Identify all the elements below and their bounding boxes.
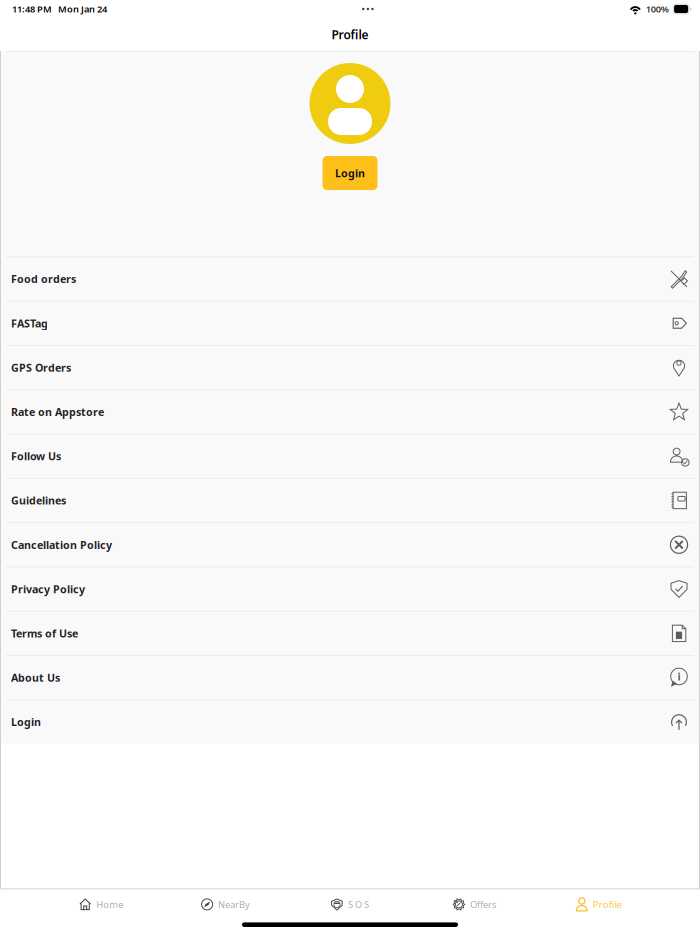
staticText: 11:48 PM [12,3,52,15]
button[interactable]: Login [0,699,700,744]
button[interactable]: Guidelines [0,478,700,522]
button[interactable]: NearBy [163,889,288,919]
staticText: 100% [642,3,673,15]
staticText: NearBy [218,898,250,911]
staticText: About Us [11,671,60,685]
button[interactable]: Food orders [0,256,700,301]
button[interactable]: Login [322,156,377,190]
staticText: Offers [470,898,496,911]
staticText: Profile [593,898,622,911]
staticText: Rate on Appstore [11,405,104,419]
button[interactable]: Rate on Appstore [0,389,700,433]
staticText: Home [96,898,123,911]
button[interactable]: Profile [537,889,661,919]
button[interactable]: Terms of Use [0,611,700,655]
staticText: Privacy Policy [11,582,85,596]
staticText: Login [11,715,41,729]
button[interactable]: About Us [0,655,700,699]
staticText: Cancellation Policy [11,538,112,552]
staticText: S O S [348,898,369,911]
staticText: Follow Us [11,449,61,463]
staticText: Food orders [11,272,76,286]
button[interactable]: Follow Us [0,433,700,478]
staticText: Guidelines [11,493,66,508]
button[interactable]: Privacy Policy [0,566,700,611]
staticText: FASTag [11,316,48,330]
button[interactable]: Home [39,889,163,919]
button[interactable]: GPS Orders [0,345,700,389]
staticText: i [677,669,680,684]
staticText: Terms of Use [11,626,78,640]
staticText: Profile [331,26,368,42]
button[interactable]: Cancellation Policy [0,522,700,566]
button[interactable]: Offers [412,889,537,919]
button[interactable]: FASTag [0,301,700,345]
button[interactable]: S O S [288,889,412,919]
staticText: Login [335,166,365,180]
staticText: Mon Jan 24 [52,3,107,15]
staticText: GPS Orders [11,360,71,375]
